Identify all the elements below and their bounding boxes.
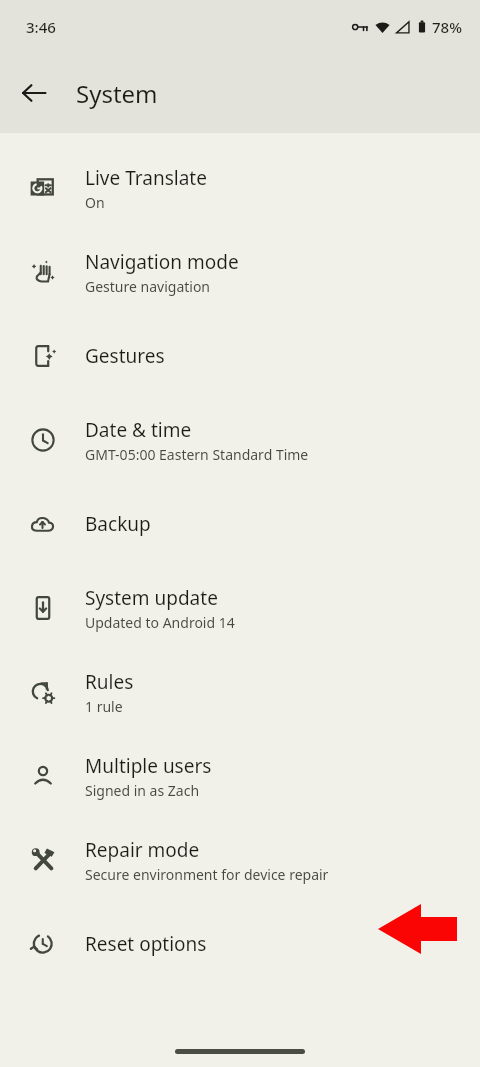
staticText: Rules (85, 669, 134, 695)
button[interactable]: Navigation mode (0, 230, 480, 314)
button[interactable]: Rules (0, 650, 480, 734)
staticText: Live Translate (85, 165, 207, 191)
staticText: Gesture navigation (85, 277, 211, 296)
staticText: Signed in as Zach (85, 781, 200, 800)
staticText: Gestures (85, 343, 165, 369)
staticText: Multiple users (85, 753, 212, 779)
button[interactable]: Back (10, 69, 58, 117)
button[interactable]: Repair mode (0, 818, 480, 902)
button[interactable]: Date & time (0, 398, 480, 482)
staticText: System update (85, 585, 218, 611)
staticText: System (76, 77, 158, 110)
button[interactable]: Reset options (0, 902, 480, 986)
staticText: Navigation mode (85, 249, 239, 275)
staticText: Reset options (85, 931, 207, 957)
staticText: Secure environment for device repair (85, 865, 329, 884)
staticText: GMT-05:00 Eastern Standard Time (85, 445, 309, 464)
staticText: 3:46 (26, 17, 56, 37)
staticText: Updated to Android 14 (85, 613, 235, 632)
staticText: On (85, 193, 105, 212)
button[interactable]: Live Translate (0, 146, 480, 230)
staticText: Repair mode (85, 837, 200, 863)
button[interactable]: System update (0, 566, 480, 650)
button[interactable]: Gestures (0, 314, 480, 398)
button[interactable]: Multiple users (0, 734, 480, 818)
staticText: Backup (85, 511, 151, 537)
staticText: 1 rule (85, 697, 123, 716)
staticText: Date & time (85, 417, 192, 443)
staticText: 78% (432, 17, 462, 37)
button[interactable]: Backup (0, 482, 480, 566)
